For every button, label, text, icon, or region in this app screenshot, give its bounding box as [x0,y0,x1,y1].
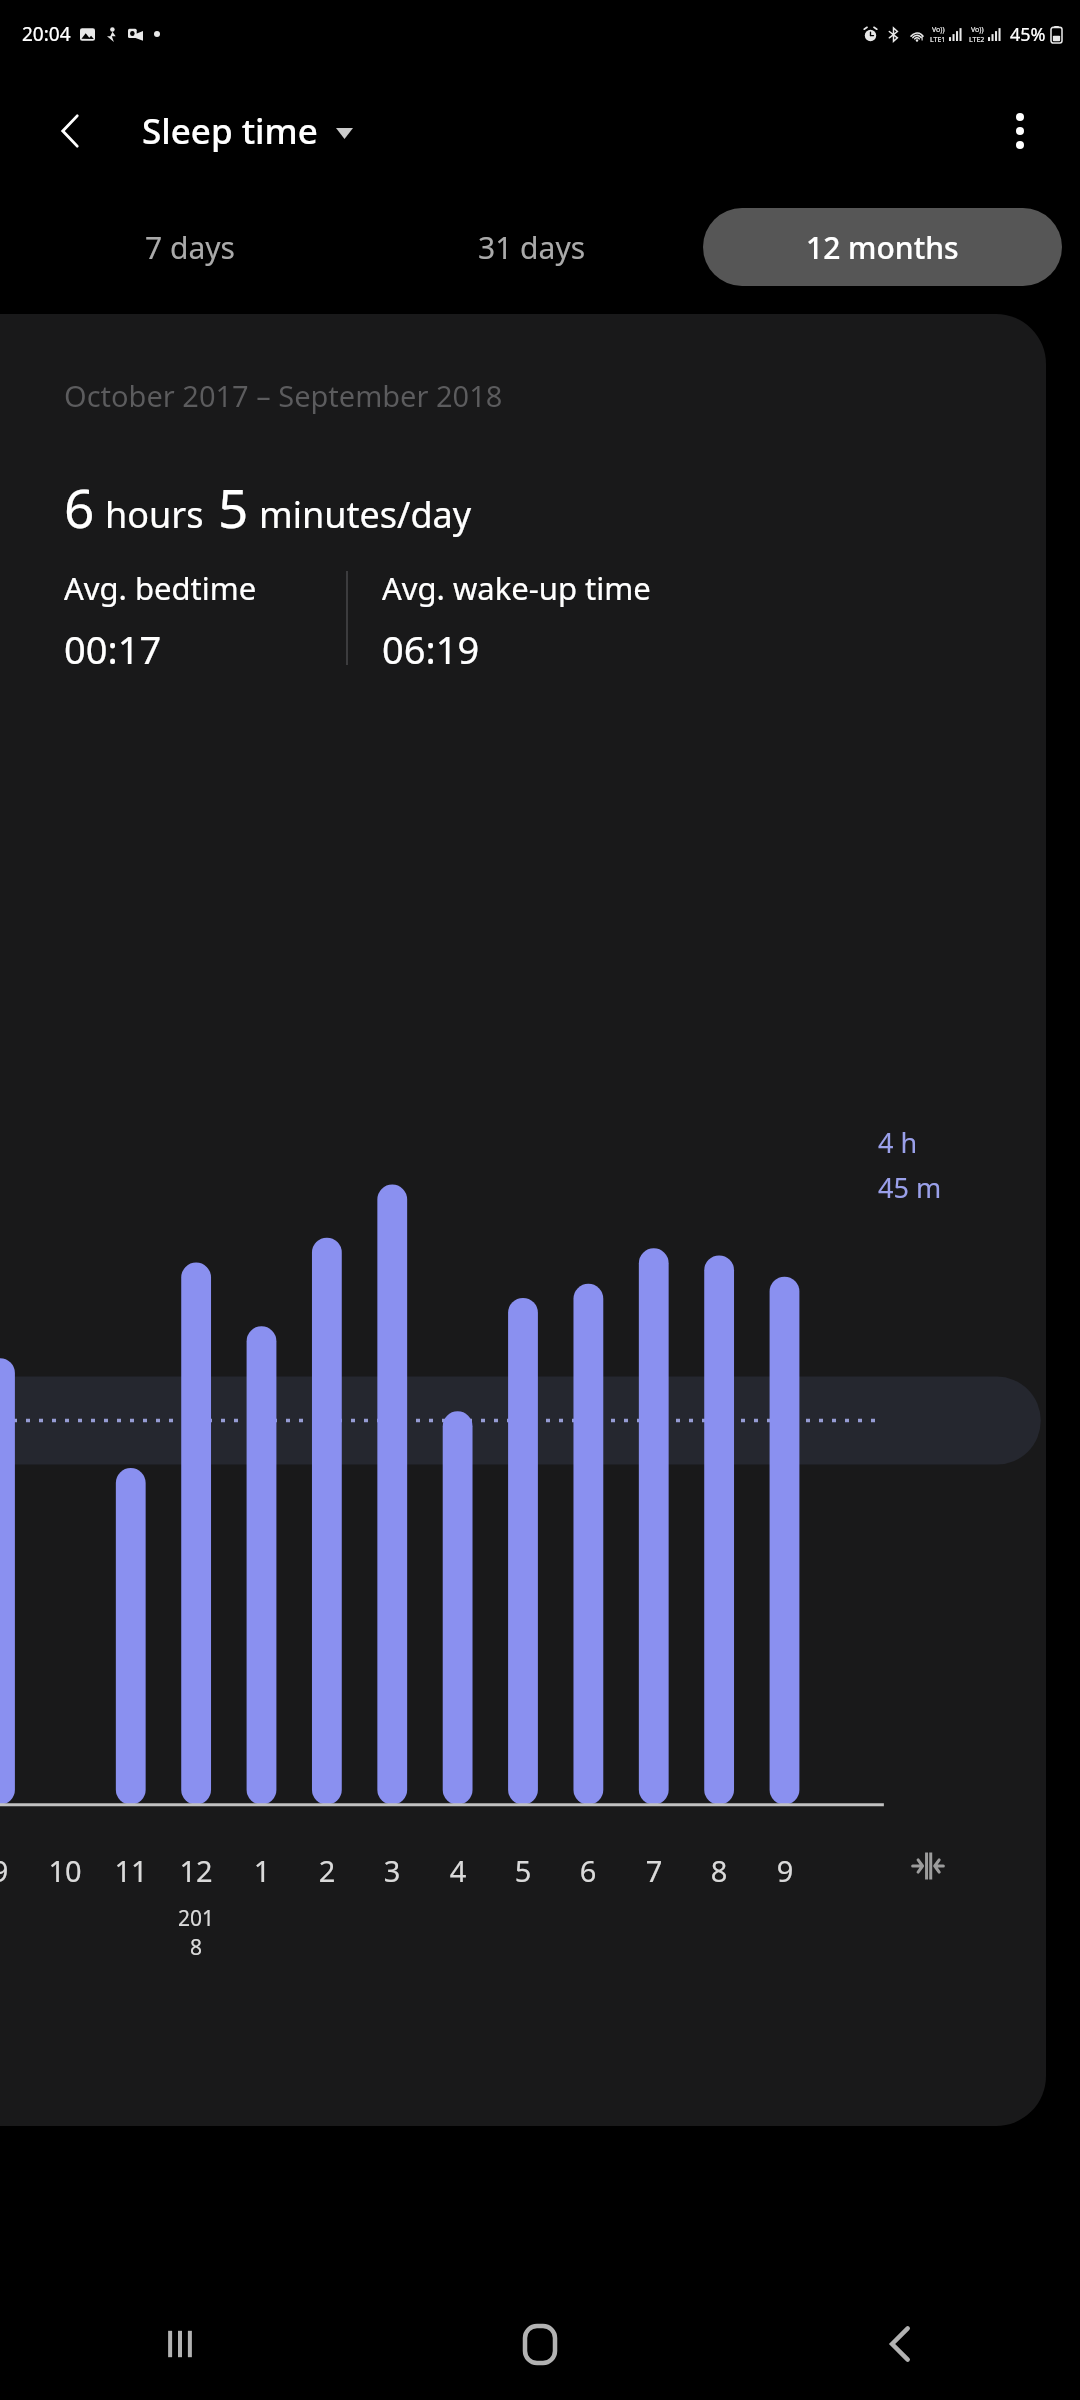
staticText: 4 [434,1851,482,1890]
staticText: 3 [368,1851,416,1890]
staticText: 12 [172,1851,220,1890]
staticText: LTE1 [930,35,946,45]
staticText: 7 days [145,227,235,268]
staticText: 5 [499,1851,547,1890]
staticText: 9 [0,1851,24,1890]
staticText: 12 months [806,227,959,268]
staticText: 1 [238,1851,286,1890]
staticText: Vo)) [932,25,945,35]
button[interactable]: 12 months [703,208,1062,286]
button[interactable]: Recent apps [136,2300,224,2388]
staticText: 5 [218,471,249,543]
staticText: hours [105,490,204,539]
staticText: 8 [695,1851,743,1890]
button[interactable]: Back [856,2300,944,2388]
button[interactable]: More options [988,99,1052,163]
staticText: 00:17 [64,623,162,675]
staticText: 20:04 [22,21,71,47]
staticText: 4 h [878,1124,918,1161]
staticText: minutes/day [259,490,472,539]
staticText: Avg. wake-up time [382,567,651,609]
staticText: 7 [630,1851,678,1890]
staticText: 6 [564,1851,612,1890]
staticText: 31 days [478,227,586,268]
button[interactable]: Home [496,2300,584,2388]
staticText: 06:19 [382,623,480,675]
staticText: Sleep time [142,107,318,155]
staticText: Avg. bedtime [64,567,257,609]
staticText: 2 [303,1851,351,1890]
staticText: 45% [1010,22,1046,47]
staticText: LTE2 [969,35,985,45]
staticText: 10 [41,1851,89,1890]
staticText: 9 [761,1851,809,1890]
staticText: 6 [64,471,95,543]
button[interactable]: 7 days [119,208,261,286]
button[interactable]: 31 days [452,208,612,286]
staticText: 2018 [172,1904,220,1962]
staticText: 45 m [878,1169,942,1206]
button[interactable]: Compress chart [900,1838,956,1894]
staticText: Vo)) [971,25,984,35]
button[interactable]: Back [40,101,100,161]
button[interactable]: Sleep time [142,107,353,155]
staticText: 11 [107,1851,155,1890]
staticText: October 2017 – September 2018 [64,376,503,415]
